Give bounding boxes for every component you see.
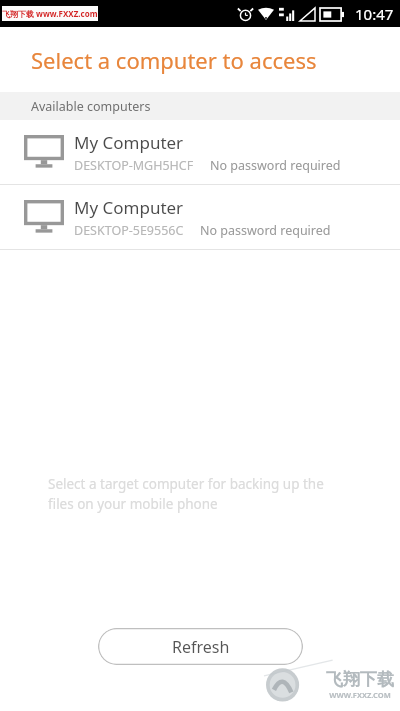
staticText: Select a computer to access <box>31 45 317 75</box>
staticText: DESKTOP-5E9556C <box>74 222 184 239</box>
staticText: Select a target computer for backing up … <box>48 475 324 493</box>
staticText: Available computers <box>31 98 151 115</box>
staticText: DESKTOP-MGH5HCF <box>74 157 194 174</box>
staticText: No password required <box>200 222 331 239</box>
staticText: No password required <box>210 157 341 174</box>
staticText: 飞翔下载 www.FXXZ.com <box>2 8 98 19</box>
staticText: 10:47 <box>355 4 394 24</box>
staticText: Refresh <box>172 636 230 658</box>
staticText: My Computer <box>74 131 184 154</box>
button[interactable]: My Computer <box>0 185 400 249</box>
button[interactable]: Refresh <box>98 628 303 665</box>
button[interactable]: My Computer <box>0 120 400 184</box>
staticText: WWW.FXXZ.COM <box>329 690 391 700</box>
staticText: 飞翔下载 <box>326 669 394 690</box>
staticText: My Computer <box>74 196 184 219</box>
staticText: files on your mobile phone <box>48 495 218 513</box>
